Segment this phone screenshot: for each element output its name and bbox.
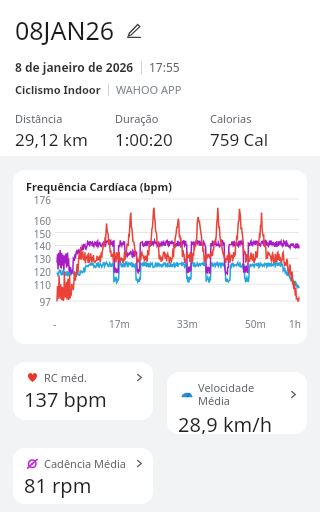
button[interactable]: Velocidade Média <box>167 372 307 434</box>
staticText: 1:00:20 <box>115 128 173 151</box>
staticText: - <box>53 317 57 331</box>
button[interactable]: RC méd. <box>13 362 153 420</box>
staticText: Duração <box>115 111 159 126</box>
other: RC méd. <box>134 372 145 383</box>
staticText: RC méd. <box>44 370 87 385</box>
button[interactable]: Edit name <box>124 21 142 39</box>
button[interactable]: Frequência Cardíaca (bpm) <box>13 170 307 344</box>
staticText: 176 <box>18 193 51 207</box>
staticText: 17:55 <box>149 59 180 75</box>
other: Cadência Média <box>134 458 145 469</box>
button[interactable]: Cadência Média <box>13 448 153 504</box>
staticText: 759 Cal <box>210 128 269 151</box>
staticText: 1h <box>289 317 301 331</box>
staticText: 130 <box>18 252 51 266</box>
staticText: Frequência Cardíaca (bpm) <box>26 179 172 194</box>
staticText: 28,9 km/h <box>178 411 273 434</box>
staticText: WAHOO APP <box>116 82 182 97</box>
staticText: 08JAN26 <box>15 13 115 47</box>
staticText: Velocidade Média <box>198 380 255 408</box>
staticText: Cadência Média <box>44 456 126 471</box>
staticText: 110 <box>18 278 51 292</box>
staticText: Ciclismo Indoor <box>15 82 101 97</box>
staticText: 120 <box>18 265 51 279</box>
staticText: Distância <box>15 111 63 126</box>
staticText: 8 de janeiro de 2026 <box>15 59 134 75</box>
staticText: 50m <box>245 317 266 331</box>
staticText: 137 bpm <box>24 386 107 413</box>
staticText: 33m <box>177 317 198 331</box>
staticText: 17m <box>109 317 130 331</box>
staticText: Calorias <box>210 111 252 126</box>
other: Velocidade Média <box>288 389 299 400</box>
staticText: 81 rpm <box>24 472 92 499</box>
staticText: 140 <box>18 239 51 253</box>
staticText: 97 <box>18 295 51 309</box>
staticText: 160 <box>18 214 51 228</box>
staticText: 150 <box>18 227 51 241</box>
staticText: 29,12 km <box>15 128 88 151</box>
